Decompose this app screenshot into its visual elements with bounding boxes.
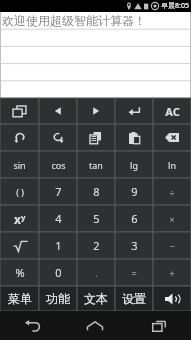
button[interactable]: 文本	[77, 286, 115, 311]
button[interactable]: Undo	[0, 124, 39, 151]
button[interactable]: ln	[153, 151, 191, 178]
button[interactable]: Recents	[127, 311, 191, 340]
button[interactable]: 8	[77, 178, 115, 205]
button[interactable]: Back	[0, 311, 63, 340]
staticText: ×	[169, 213, 175, 225]
button[interactable]: ÷	[153, 178, 191, 205]
button[interactable]: 功能	[39, 286, 77, 311]
button[interactable]: ×	[153, 205, 191, 232]
staticText: 欢迎使用超级智能计算器！	[2, 13, 146, 28]
button[interactable]: cos	[39, 151, 77, 178]
staticText: 3	[131, 238, 138, 253]
button[interactable]: Enter	[115, 98, 153, 124]
button[interactable]: 6	[115, 205, 153, 232]
staticText: 7	[55, 184, 62, 199]
staticText: xʸ	[14, 211, 26, 227]
staticText: 菜单	[8, 291, 32, 306]
button[interactable]: %	[0, 259, 39, 286]
staticText: 0	[55, 265, 62, 280]
button[interactable]: Windows	[0, 98, 39, 124]
button[interactable]: +	[153, 259, 191, 286]
button[interactable]: Redo	[39, 124, 77, 151]
button[interactable]: AC	[153, 98, 191, 124]
button[interactable]: Home	[63, 311, 127, 340]
button[interactable]: Sound	[153, 286, 191, 311]
button[interactable]: 2	[77, 232, 115, 259]
button[interactable]: 设置	[115, 286, 153, 311]
staticText: ln	[168, 159, 176, 171]
staticText: 6	[131, 211, 138, 226]
staticText: 8	[93, 184, 100, 199]
staticText: ÷	[169, 186, 175, 198]
staticText: −	[169, 240, 175, 252]
staticText: cos	[51, 159, 66, 171]
button[interactable]: 0	[39, 259, 77, 286]
button[interactable]: y-th root of x	[0, 232, 39, 259]
staticText: sin	[13, 159, 26, 171]
button[interactable]: =	[115, 259, 153, 286]
button[interactable]: 7	[39, 178, 77, 205]
button[interactable]: .	[77, 259, 115, 286]
button[interactable]: 1	[39, 232, 77, 259]
staticText: 4	[55, 211, 62, 226]
staticText: .	[95, 267, 98, 279]
button[interactable]: Move left	[39, 98, 77, 124]
staticText: tan	[89, 159, 103, 171]
button[interactable]: −	[153, 232, 191, 259]
button[interactable]: x to the power y	[0, 205, 39, 232]
staticText: 设置	[122, 291, 146, 306]
button[interactable]: sin	[0, 151, 39, 178]
staticText: 功能	[46, 291, 70, 306]
staticText: %	[15, 265, 25, 280]
button[interactable]: Backspace	[153, 124, 191, 151]
button[interactable]: 4	[39, 205, 77, 232]
staticText: 5	[93, 211, 100, 226]
staticText: 早晨8:05	[161, 1, 189, 11]
button[interactable]: Paste	[115, 124, 153, 151]
staticText: 文本	[84, 291, 108, 306]
staticText: 1	[55, 238, 62, 253]
staticText: 2	[93, 238, 100, 253]
staticText: 9	[131, 184, 138, 199]
button[interactable]: 5	[77, 205, 115, 232]
button[interactable]: ( )	[0, 178, 39, 205]
staticText: lg	[130, 159, 138, 171]
staticText: ( )	[16, 186, 24, 198]
button[interactable]: Copy	[77, 124, 115, 151]
staticText: =	[131, 267, 137, 279]
staticText: +	[169, 267, 175, 279]
button[interactable]: Move right	[77, 98, 115, 124]
button[interactable]: lg	[115, 151, 153, 178]
button[interactable]: tan	[77, 151, 115, 178]
button[interactable]: 9	[115, 178, 153, 205]
button[interactable]: 菜单	[0, 286, 39, 311]
staticText: AC	[165, 104, 180, 119]
button[interactable]: 3	[115, 232, 153, 259]
